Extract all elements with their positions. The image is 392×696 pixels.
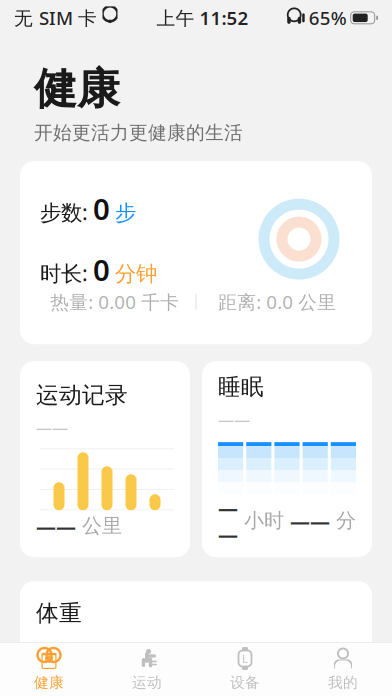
staticText: —— <box>218 409 250 430</box>
staticText: —— <box>36 417 68 438</box>
staticText: 运动 <box>132 673 162 691</box>
staticText: 健康 <box>34 63 120 115</box>
staticText: 分 <box>336 508 356 533</box>
button[interactable]: 步数: <box>20 161 372 344</box>
staticText: 65% <box>309 5 347 30</box>
staticText: 体重 <box>36 599 82 627</box>
staticText: —— <box>36 513 76 539</box>
staticText: 0 <box>93 250 110 289</box>
staticText: L <box>242 651 248 666</box>
staticText: 0 <box>93 189 110 228</box>
button[interactable]: 我的 <box>294 642 392 696</box>
button[interactable]: 运动记录 <box>20 361 190 557</box>
staticText: 上午 11:52 <box>157 5 249 30</box>
staticText: —— <box>290 507 330 534</box>
staticText: 运动记录 <box>36 381 128 409</box>
staticText: 我的 <box>328 673 358 691</box>
staticText: 热量: 0.00 千卡 <box>50 289 179 314</box>
staticText: 时长: <box>40 259 88 287</box>
staticText: 健康 <box>34 673 64 691</box>
staticText: 设备 <box>230 673 260 691</box>
staticText: 步 <box>115 200 136 226</box>
staticText: 开始更活力更健康的生活 <box>34 121 243 144</box>
staticText: —— <box>218 494 238 547</box>
button[interactable]: L <box>196 642 294 696</box>
staticText: 分钟 <box>115 261 157 287</box>
staticText: —— <box>36 635 68 656</box>
button[interactable]: 体重 <box>20 581 372 696</box>
staticText: 无 SIM 卡 <box>14 5 97 30</box>
button[interactable]: 睡眠 <box>202 361 372 557</box>
staticText: 公里 <box>82 514 122 538</box>
staticText: 距离: 0.0 公里 <box>218 289 336 314</box>
button[interactable]: 健康 <box>0 642 98 696</box>
staticText: 步数: <box>40 198 88 226</box>
staticText: 睡眠 <box>218 373 264 401</box>
staticText: 小时 <box>244 508 284 533</box>
button[interactable]: 运动 <box>98 642 196 696</box>
